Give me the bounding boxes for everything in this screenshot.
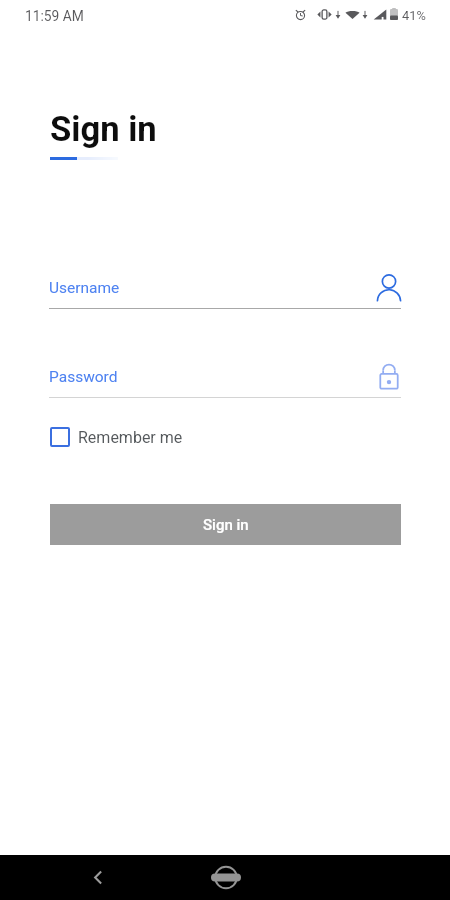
staticText: Sign in	[203, 516, 249, 534]
staticText: Sign in	[50, 109, 157, 150]
staticText: Password	[49, 368, 118, 386]
button[interactable]: Home	[207, 859, 244, 896]
button[interactable]: Remember me	[50, 427, 189, 447]
button[interactable]: Sign in	[50, 504, 401, 545]
staticText: 11:59 AM	[25, 8, 84, 24]
staticText: Remember me	[78, 428, 183, 447]
button[interactable]: Back	[79, 859, 116, 896]
staticText: Username	[49, 279, 120, 297]
staticText: 41%	[402, 8, 426, 23]
